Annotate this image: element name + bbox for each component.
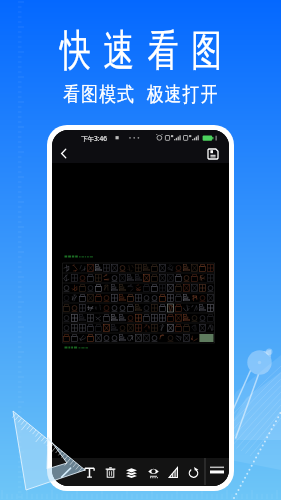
staticText: 下午3:46 [81, 134, 107, 143]
button[interactable]: Redo [183, 460, 203, 484]
button[interactable]: Delete [100, 460, 120, 484]
button[interactable]: Draw [56, 460, 76, 484]
button[interactable]: Layer panel [210, 465, 224, 478]
button[interactable]: Save [204, 144, 222, 163]
staticText: 看图模式 极速打开 [63, 80, 219, 106]
staticText: 快速看图 [53, 24, 229, 78]
button[interactable]: Layers [121, 460, 141, 484]
button[interactable]: Text [79, 460, 99, 484]
button[interactable]: Back [54, 144, 72, 163]
button[interactable]: Visibility [143, 460, 163, 484]
button[interactable]: Measure [163, 460, 183, 484]
